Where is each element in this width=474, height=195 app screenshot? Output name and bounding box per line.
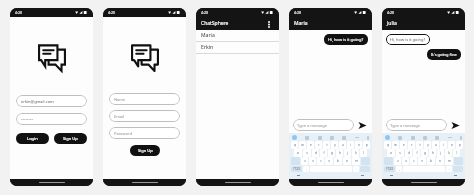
button[interactable]: g: [328, 149, 335, 157]
button[interactable]: a: [387, 149, 395, 157]
button[interactable]: r: [315, 141, 322, 149]
button[interactable]: n: [343, 157, 351, 165]
button[interactable]: b: [427, 157, 435, 165]
button[interactable]: d: [312, 149, 319, 157]
staticText: e: [310, 143, 312, 147]
button[interactable]: k: [445, 149, 452, 157]
staticText: c: [413, 159, 415, 163]
button[interactable]: a: [294, 149, 302, 157]
button[interactable]: Send: [357, 120, 368, 131]
button[interactable]: i: [347, 141, 354, 149]
button[interactable]: Erkin: [196, 42, 279, 53]
button[interactable]: v: [418, 157, 426, 165]
button[interactable]: v: [325, 157, 333, 165]
button[interactable]: q: [384, 141, 391, 149]
button[interactable]: erkin@gmail.com: [16, 95, 87, 107]
staticText: ?123: [293, 167, 300, 171]
button[interactable]: e: [400, 141, 407, 149]
button[interactable]: f: [320, 149, 327, 157]
button[interactable]: w: [299, 141, 306, 149]
button[interactable]: h: [429, 149, 436, 157]
button[interactable]: d: [405, 149, 412, 157]
button[interactable]: .: [446, 166, 452, 172]
button[interactable]: e: [307, 141, 314, 149]
button[interactable]: s: [396, 149, 404, 157]
button[interactable]: y: [331, 141, 338, 149]
button[interactable]: q: [291, 141, 298, 149]
button[interactable]: ••••••••: [16, 113, 87, 125]
button[interactable]: h: [336, 149, 343, 157]
button[interactable]: r: [408, 141, 415, 149]
button[interactable]: u: [339, 141, 346, 149]
button[interactable]: o: [448, 141, 455, 149]
staticText: l: [456, 151, 457, 155]
button[interactable]: ,: [303, 166, 309, 172]
staticText: ,: [399, 167, 400, 171]
button[interactable]: j: [344, 149, 351, 157]
button[interactable]: ?123: [291, 166, 302, 172]
button[interactable]: l: [453, 149, 460, 157]
button[interactable]: p: [456, 141, 463, 149]
button[interactable]: m: [352, 157, 360, 165]
button[interactable]: x: [402, 157, 409, 165]
button[interactable]: ?123: [384, 166, 395, 172]
button[interactable]: y: [424, 141, 431, 149]
staticText: n: [346, 159, 348, 163]
button[interactable]: Password: [109, 127, 180, 139]
staticText: s: [306, 151, 308, 155]
button[interactable]: Hi, how is it going?: [386, 34, 430, 45]
button[interactable]: s: [303, 149, 311, 157]
button[interactable]: n: [436, 157, 444, 165]
button[interactable]: More options: [264, 19, 274, 29]
button[interactable]: c: [410, 157, 417, 165]
button[interactable]: Sign Up: [130, 145, 160, 156]
button[interactable]: c: [317, 157, 324, 165]
button[interactable]: .: [353, 166, 359, 172]
button[interactable]: ,: [396, 166, 402, 172]
staticText: Login: [27, 136, 38, 141]
button[interactable]: Login: [16, 133, 49, 144]
button[interactable]: z: [394, 157, 401, 165]
button[interactable]: Sign Up: [54, 133, 87, 144]
button[interactable]: Hi, how is it going?: [324, 34, 368, 45]
staticText: Sign Up: [63, 136, 78, 141]
button[interactable]: w: [392, 141, 399, 149]
staticText: ••••••••: [21, 117, 34, 122]
button[interactable]: Email: [109, 110, 180, 122]
button[interactable]: f: [413, 149, 420, 157]
button[interactable]: Send: [450, 120, 461, 131]
button[interactable]: Name: [109, 93, 180, 105]
button[interactable]: x: [309, 157, 316, 165]
button[interactable]: i: [440, 141, 447, 149]
staticText: Type a message: [297, 123, 328, 128]
staticText: .: [356, 167, 357, 171]
button[interactable]: o: [355, 141, 362, 149]
button[interactable]: j: [437, 149, 444, 157]
button[interactable]: l: [360, 149, 367, 157]
button[interactable]: k: [352, 149, 359, 157]
button[interactable]: Maria: [196, 30, 279, 41]
button[interactable]: g: [421, 149, 428, 157]
button[interactable]: It's going fine: [427, 49, 461, 60]
button[interactable]: z: [301, 157, 308, 165]
button[interactable]: p: [363, 141, 370, 149]
staticText: x: [312, 159, 314, 163]
button[interactable]: Type a message: [386, 119, 447, 131]
staticText: i: [350, 143, 351, 147]
staticText: e: [403, 143, 405, 147]
button[interactable]: m: [445, 157, 453, 165]
button[interactable]: t: [416, 141, 423, 149]
button[interactable]: b: [334, 157, 342, 165]
button[interactable]: Type a message: [293, 119, 354, 131]
staticText: 4:20: [108, 10, 115, 15]
button[interactable]: u: [432, 141, 439, 149]
button[interactable]: t: [323, 141, 330, 149]
